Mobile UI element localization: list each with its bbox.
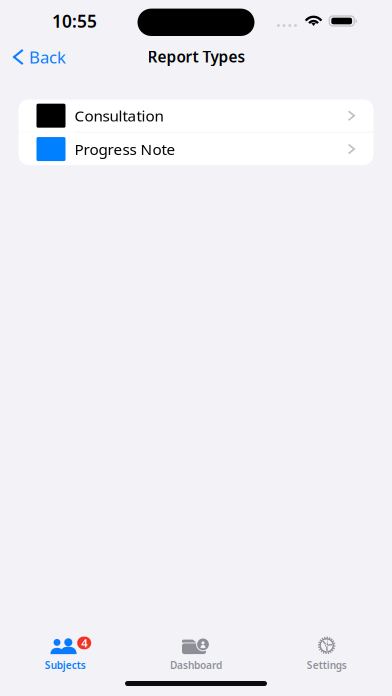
staticText: Consultation	[74, 105, 163, 126]
button[interactable]: Consultation	[18, 99, 373, 132]
staticText: Back	[29, 46, 66, 68]
button[interactable]: Progress Note	[18, 133, 373, 165]
staticText: Progress Note	[74, 139, 175, 159]
staticText: 4	[81, 635, 87, 651]
button[interactable]: Settings	[261, 634, 392, 672]
button[interactable]: Dashboard	[131, 634, 261, 672]
staticText: Report Types	[147, 46, 245, 67]
staticText: Settings	[307, 658, 347, 672]
button[interactable]: Back	[8, 44, 74, 70]
staticText: Subjects	[45, 658, 86, 672]
staticText: Dashboard	[170, 658, 222, 672]
staticText: 10:55	[52, 9, 97, 33]
button[interactable]: 4	[0, 634, 131, 672]
